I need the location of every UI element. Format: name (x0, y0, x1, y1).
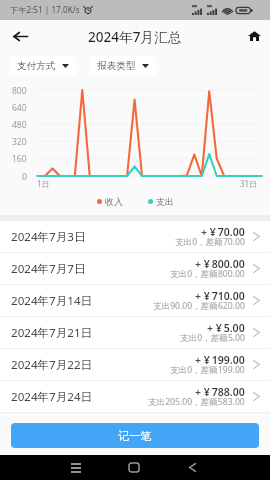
button[interactable]: Back (172, 455, 212, 480)
staticText: 支出 (156, 196, 174, 207)
staticText: 支出0，差额199.00 (170, 364, 245, 376)
button[interactable]: 2024年7月21日 (0, 317, 270, 349)
staticText: 2024年7月3日 (11, 229, 86, 245)
staticText: 支出90.00，差额620.00 (153, 300, 245, 312)
staticText: 支出0，差额5.00 (180, 332, 245, 344)
staticText: 2024年7月22日 (11, 357, 93, 373)
button[interactable]: 2024年7月14日 (0, 285, 270, 317)
button[interactable]: Back (3, 20, 37, 52)
button[interactable]: 2024年7月7日 (0, 253, 270, 285)
staticText: 2024年7月7日 (11, 261, 86, 277)
staticText: 800 (12, 85, 27, 97)
staticText: 记一笔 (118, 429, 152, 443)
button[interactable]: Home (114, 455, 154, 480)
staticText: 2024年7月21日 (11, 325, 93, 341)
staticText: 2024年7月汇总 (88, 27, 182, 46)
staticText: + ¥ 199.00 (195, 353, 245, 367)
staticText: 320 (12, 136, 27, 148)
staticText: 160 (12, 153, 27, 165)
button[interactable]: 支付方式 (10, 56, 76, 75)
staticText: + ¥ 800.00 (195, 257, 245, 271)
button[interactable]: 2024年7月24日 (0, 381, 270, 413)
button[interactable]: 2024年7月22日 (0, 349, 270, 381)
staticText: 2024年7月14日 (11, 293, 93, 309)
button[interactable]: Recent apps (56, 455, 96, 480)
staticText: + ¥ 710.00 (195, 289, 245, 303)
staticText: 480 (12, 119, 27, 131)
staticText: 报表类型 (97, 60, 136, 72)
staticText: 支付方式 (17, 60, 56, 72)
button[interactable]: 报表类型 (90, 56, 156, 75)
staticText: 收入 (105, 196, 123, 207)
staticText: 1日 (37, 178, 50, 189)
staticText: 支出0，差额70.00 (175, 236, 245, 248)
staticText: + ¥ 5.00 (207, 321, 245, 335)
staticText: 下午2:51 | 17.0K/s (10, 4, 80, 15)
staticText: + ¥ 788.00 (195, 385, 245, 399)
staticText: 支出0，差额800.00 (170, 268, 245, 280)
staticText: 640 (12, 102, 27, 114)
button[interactable]: 记一笔 (11, 423, 259, 448)
staticText: 0 (22, 171, 27, 183)
button[interactable]: Home (238, 20, 270, 52)
button[interactable]: 2024年7月3日 (0, 221, 270, 253)
staticText: 31日 (240, 178, 258, 189)
staticText: 2024年7月24日 (11, 389, 93, 405)
staticText: 支出205.00，差额583.00 (148, 396, 245, 408)
staticText: + ¥ 70.00 (201, 225, 245, 239)
